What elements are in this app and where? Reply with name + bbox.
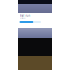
button[interactable]: Trail run (18, 13, 52, 28)
staticText: 4.2 mi loop (19, 17, 25, 19)
staticText: Trail run (19, 14, 30, 17)
